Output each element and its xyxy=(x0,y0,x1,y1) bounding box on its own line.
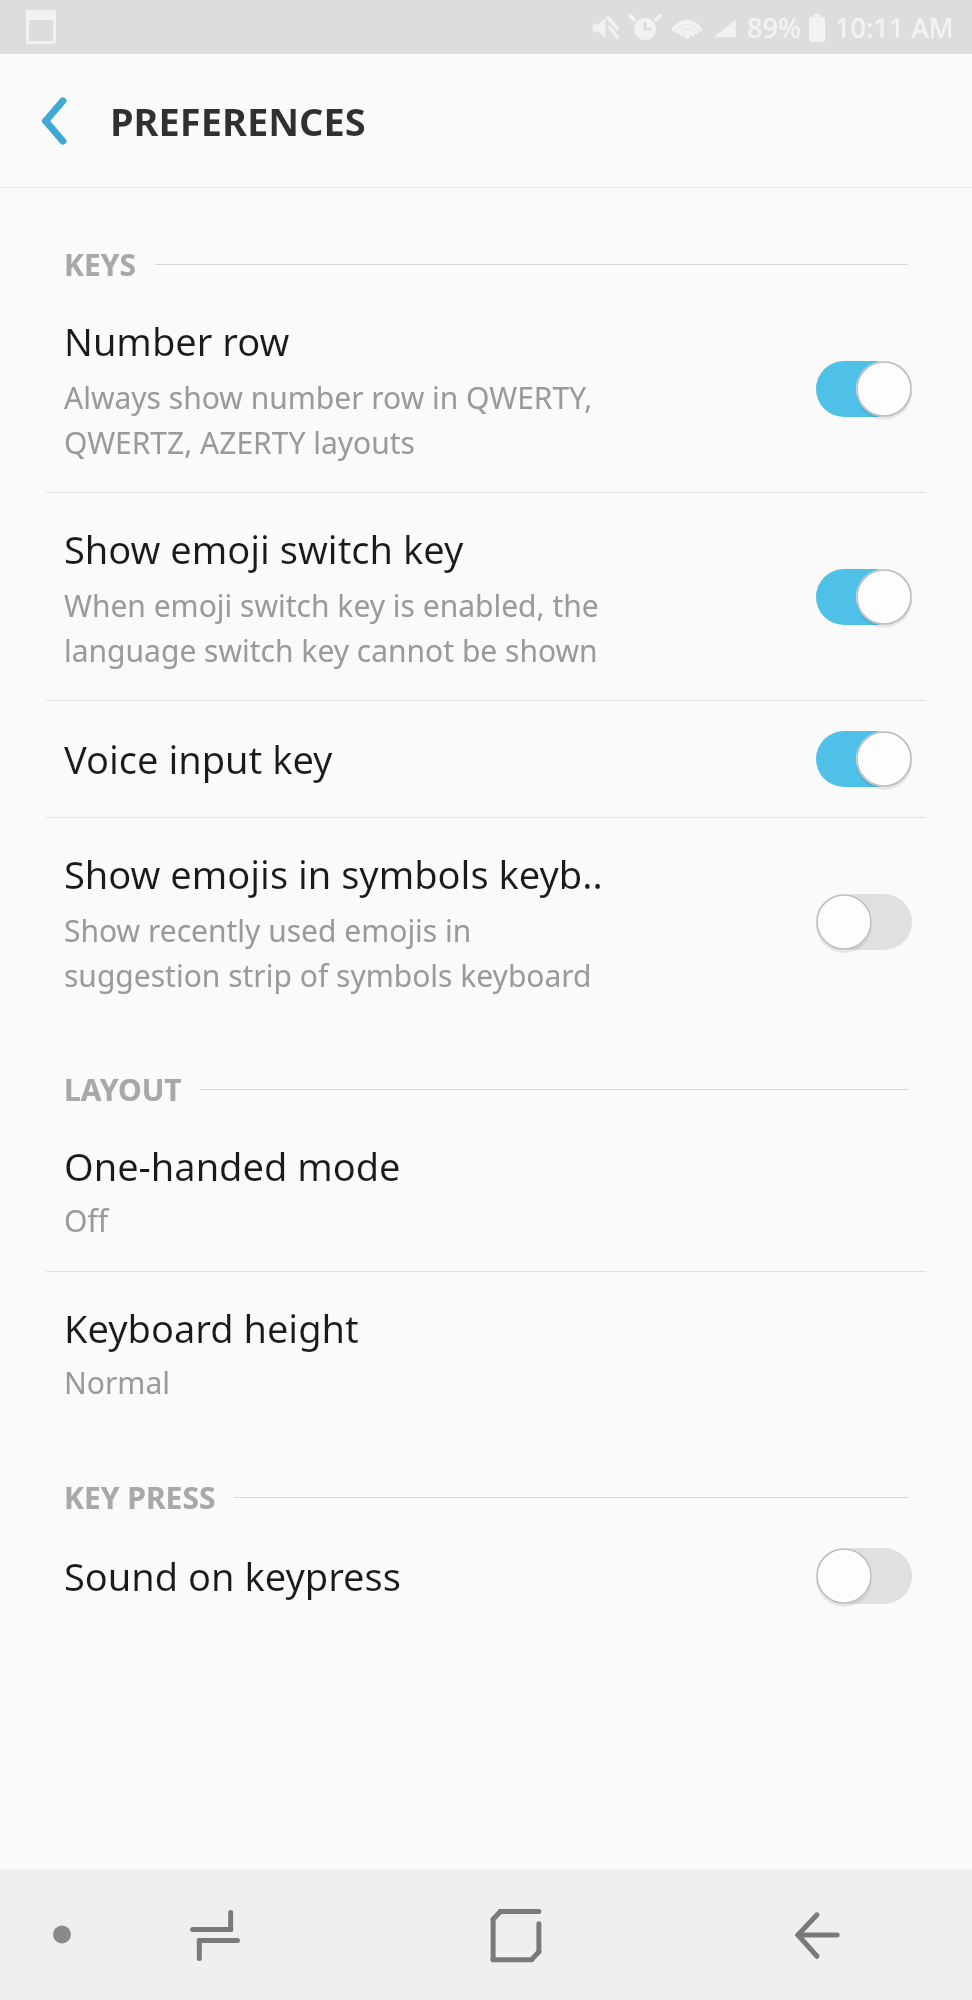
staticText: Normal xyxy=(64,1362,170,1403)
button[interactable]: Sound on keypress xyxy=(0,1518,972,1634)
button[interactable]: One-handed mode xyxy=(0,1110,972,1271)
staticText: One-handed mode xyxy=(64,1140,401,1192)
button[interactable]: Show emoji switch key xyxy=(0,493,972,700)
button[interactable]: Off xyxy=(816,1548,912,1604)
button[interactable]: On xyxy=(816,361,912,417)
staticText: Number row xyxy=(64,315,290,367)
staticText: Show emoji switch key xyxy=(64,523,464,575)
staticText: Show recently used emojis in suggestion … xyxy=(64,910,592,995)
button[interactable]: Home xyxy=(441,1869,591,2000)
staticText: Sound on keypress xyxy=(64,1550,401,1602)
staticText: 10:11 AM xyxy=(835,9,954,46)
button[interactable]: Back xyxy=(742,1869,892,2000)
button[interactable]: On xyxy=(816,731,912,787)
staticText: Off xyxy=(64,1200,109,1241)
staticText: Keyboard height xyxy=(64,1302,359,1354)
button[interactable]: Off xyxy=(816,894,912,950)
staticText: Show emojis in symbols keyb.. xyxy=(64,848,603,900)
staticText: Voice input key xyxy=(64,733,333,785)
button[interactable]: Show emojis in symbols keyb.. xyxy=(0,818,972,1025)
staticText: 89% xyxy=(747,9,801,46)
staticText: Always show number row in QWERTY, QWERTZ… xyxy=(64,377,593,462)
button[interactable]: Back xyxy=(0,54,110,188)
staticText: KEY PRESS xyxy=(64,1477,216,1518)
button[interactable]: Voice input key xyxy=(0,701,972,817)
button[interactable]: Number row xyxy=(0,285,972,492)
staticText: LAYOUT xyxy=(64,1069,182,1110)
button[interactable]: Keyboard height xyxy=(0,1272,972,1433)
button[interactable]: On xyxy=(816,569,912,625)
staticText: When emoji switch key is enabled, the la… xyxy=(64,585,599,670)
button[interactable]: Recents xyxy=(140,1869,290,2000)
staticText: KEYS xyxy=(64,244,137,285)
staticText: PREFERENCES xyxy=(110,95,366,147)
